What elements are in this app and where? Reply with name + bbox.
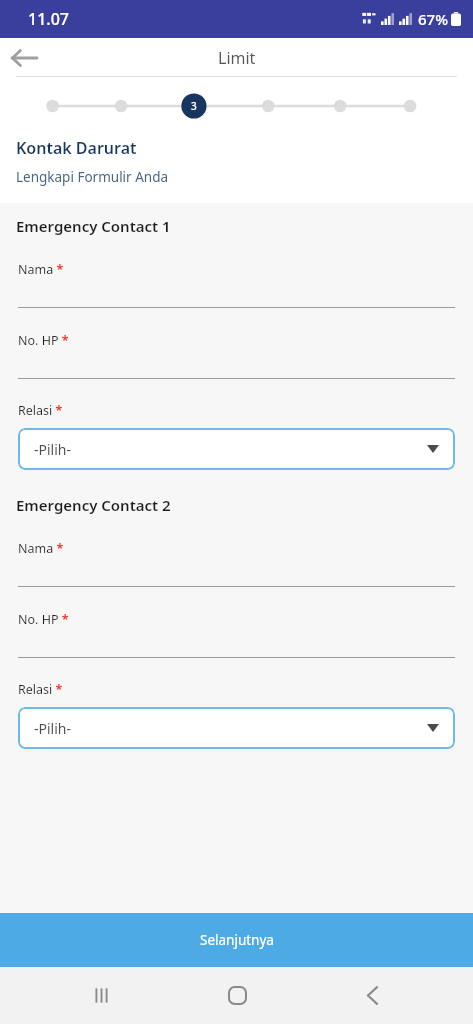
- staticText: Limit: [218, 47, 256, 69]
- button[interactable]: -Pilih-: [18, 707, 455, 749]
- staticText: Relasi *: [18, 402, 63, 419]
- staticText: -Pilih-: [34, 719, 427, 738]
- button[interactable]: Recent apps: [66, 967, 136, 1024]
- staticText: Lengkapi Formulir Anda: [16, 168, 169, 186]
- staticText: 67%: [418, 9, 448, 29]
- button[interactable]: Nama *: [0, 261, 473, 308]
- button[interactable]: Back: [337, 967, 407, 1024]
- staticText: Emergency Contact 1: [16, 216, 171, 236]
- button[interactable]: -Pilih-: [18, 428, 455, 470]
- staticText: No. HP *: [18, 611, 69, 628]
- button[interactable]: Back: [0, 38, 48, 77]
- button[interactable]: No. HP *: [0, 332, 473, 379]
- button[interactable]: Selanjutnya: [0, 913, 473, 967]
- staticText: No. HP *: [18, 332, 69, 349]
- staticText: Nama *: [18, 540, 64, 557]
- staticText: Emergency Contact 2: [16, 495, 171, 515]
- staticText: Kontak Darurat: [16, 137, 137, 159]
- staticText: Relasi *: [18, 681, 63, 698]
- button[interactable]: Home: [202, 967, 272, 1024]
- staticText: Nama *: [18, 261, 64, 278]
- staticText: -Pilih-: [34, 440, 427, 459]
- button[interactable]: Nama *: [0, 540, 473, 587]
- staticText: 3: [191, 99, 197, 113]
- button[interactable]: No. HP *: [0, 611, 473, 658]
- staticText: Selanjutnya: [200, 931, 274, 949]
- staticText: 11.07: [28, 8, 69, 30]
